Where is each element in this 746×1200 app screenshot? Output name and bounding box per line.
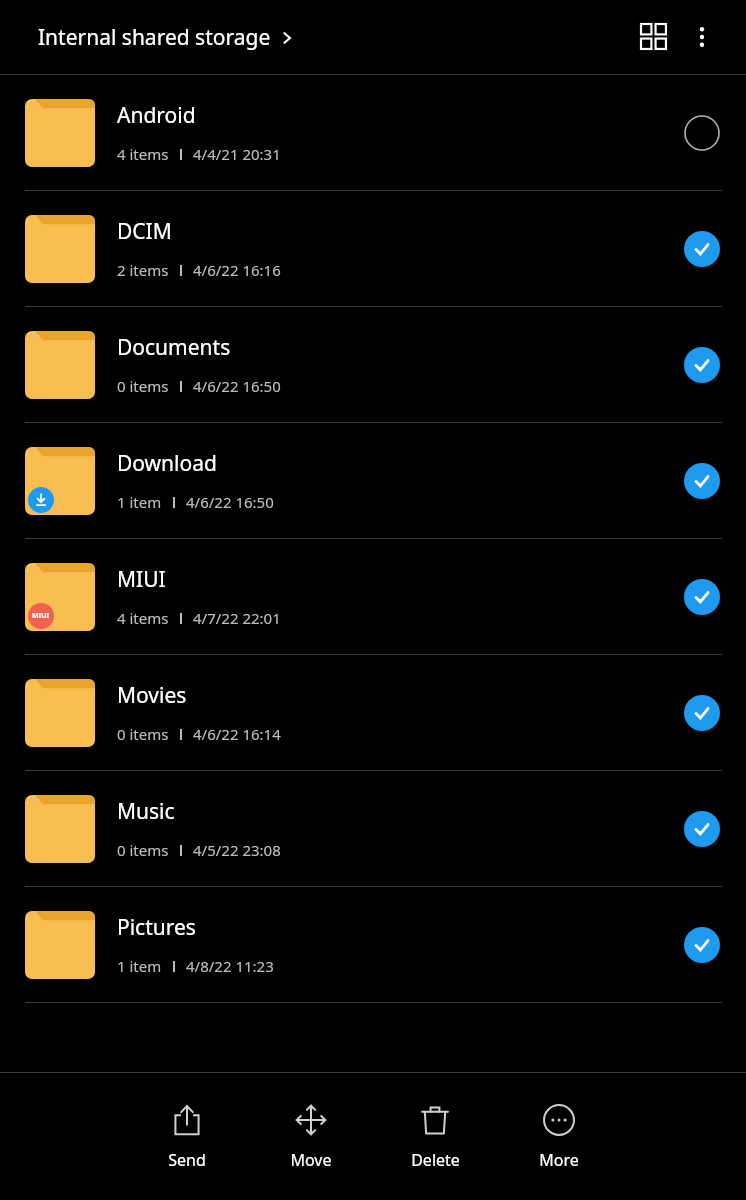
button[interactable]: Documents bbox=[0, 307, 746, 422]
button[interactable]: Movies bbox=[0, 655, 746, 770]
button[interactable]: Grid view bbox=[630, 13, 678, 61]
staticText: Delete bbox=[411, 1149, 460, 1171]
button[interactable]: Not selected bbox=[658, 75, 746, 190]
staticText: 4/6/22 16:50 bbox=[186, 492, 274, 512]
staticText: More bbox=[539, 1149, 579, 1171]
button[interactable]: Internal shared storage bbox=[38, 17, 295, 58]
staticText: Movies bbox=[117, 681, 187, 710]
button[interactable]: Selected bbox=[658, 655, 746, 770]
button[interactable]: DCIM bbox=[0, 191, 746, 306]
staticText: 4/4/21 20:31 bbox=[193, 144, 281, 164]
staticText: 4 items bbox=[117, 144, 169, 164]
staticText: 0 items bbox=[117, 840, 169, 860]
staticText: Android bbox=[117, 101, 196, 130]
staticText: DCIM bbox=[117, 217, 172, 246]
button[interactable]: More bbox=[497, 1082, 621, 1192]
button[interactable]: Selected bbox=[658, 191, 746, 306]
staticText: Send bbox=[168, 1149, 206, 1171]
staticText: 4/6/22 16:50 bbox=[193, 376, 281, 396]
button[interactable]: Send bbox=[125, 1082, 249, 1192]
staticText: 4/8/22 11:23 bbox=[186, 956, 274, 976]
button[interactable]: Pictures bbox=[0, 887, 746, 1002]
staticText: MIUI bbox=[32, 611, 50, 621]
button[interactable]: Download bbox=[0, 423, 746, 538]
staticText: 1 item bbox=[117, 492, 162, 512]
button[interactable]: Delete bbox=[373, 1082, 497, 1192]
button[interactable]: Selected bbox=[658, 539, 746, 654]
staticText: 0 items bbox=[117, 376, 169, 396]
staticText: 4/7/22 22:01 bbox=[193, 608, 281, 628]
staticText: Pictures bbox=[117, 913, 196, 942]
button[interactable]: Android bbox=[0, 75, 746, 190]
staticText: 2 items bbox=[117, 260, 169, 280]
button[interactable]: Selected bbox=[658, 307, 746, 422]
staticText: Download bbox=[117, 449, 217, 478]
button[interactable]: Move bbox=[249, 1082, 373, 1192]
button[interactable]: Music bbox=[0, 771, 746, 886]
staticText: Music bbox=[117, 797, 175, 826]
staticText: 4/6/22 16:14 bbox=[193, 724, 281, 744]
button[interactable]: Selected bbox=[658, 771, 746, 886]
staticText: Documents bbox=[117, 333, 231, 362]
staticText: 1 item bbox=[117, 956, 162, 976]
staticText: MIUI bbox=[117, 565, 166, 594]
staticText: 4 items bbox=[117, 608, 169, 628]
staticText: 4/6/22 16:16 bbox=[193, 260, 281, 280]
button[interactable]: More options bbox=[678, 13, 726, 61]
staticText: Move bbox=[290, 1149, 332, 1171]
staticText: Internal shared storage bbox=[38, 23, 271, 52]
button[interactable]: Selected bbox=[658, 423, 746, 538]
button[interactable]: MIUI bbox=[0, 539, 746, 654]
staticText: 0 items bbox=[117, 724, 169, 744]
button[interactable]: Selected bbox=[658, 887, 746, 1002]
staticText: 4/5/22 23:08 bbox=[193, 840, 281, 860]
